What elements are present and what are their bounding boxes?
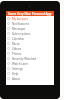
button[interactable]: Subscriptions [6,31,54,36]
staticText: Help [12,72,19,76]
staticText: Music [12,42,20,46]
staticText: Recently Watched [12,57,37,61]
button[interactable]: Videos [6,46,54,51]
staticText: My Account [12,17,28,21]
staticText: Settings [12,67,23,71]
button[interactable]: Music [6,41,54,46]
button[interactable]: About [6,76,54,81]
button[interactable]: Messages [6,26,54,31]
staticText: Messages [12,27,26,31]
button[interactable]: Some Very Nice Personal App [6,11,54,16]
button[interactable]: Photos [6,51,54,56]
button[interactable]: Notifications [6,21,54,26]
staticText: Videos [12,47,22,51]
staticText: About [12,77,21,81]
staticText: Some Very Nice Personal App [8,12,52,16]
button[interactable]: Help [6,71,54,76]
staticText: Subscriptions [12,32,31,36]
button[interactable]: Recently Watched [6,56,54,61]
button[interactable]: My Account [6,16,54,21]
staticText: Notifications [12,22,30,26]
button[interactable]: Settings [6,66,54,71]
staticText: Watch Later [12,62,29,66]
staticText: Calendar [12,37,25,41]
staticText: Photos [12,52,22,56]
button[interactable]: Watch Later [6,61,54,66]
button[interactable]: Calendar [6,36,54,41]
